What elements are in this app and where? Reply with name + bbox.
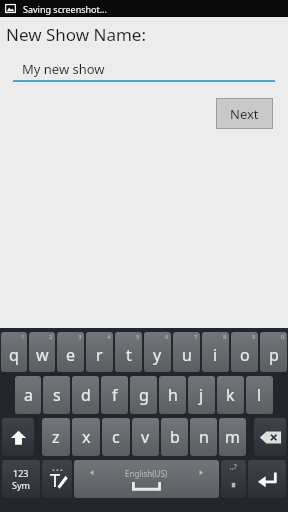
button[interactable]: 6	[144, 332, 171, 372]
button[interactable]: h	[159, 376, 186, 414]
button[interactable]: l	[246, 376, 273, 414]
staticText: s	[53, 384, 61, 406]
button[interactable]: m	[219, 418, 246, 456]
button[interactable]: x	[72, 418, 100, 456]
staticText: ,,?	[230, 462, 237, 472]
staticText: 1	[21, 333, 25, 341]
button[interactable]: c	[102, 418, 130, 456]
button[interactable]: Shift	[2, 418, 34, 456]
staticText: w	[36, 344, 49, 366]
button[interactable]: 4	[86, 332, 113, 372]
button[interactable]: f	[101, 376, 128, 414]
staticText: n	[199, 426, 209, 448]
staticText: 3	[78, 333, 82, 341]
button[interactable]: d	[72, 376, 99, 414]
staticText: 7	[194, 333, 198, 341]
button[interactable]: 8	[202, 332, 229, 372]
button[interactable]: 7	[173, 332, 200, 372]
button[interactable]: Next	[216, 98, 273, 129]
staticText: 6	[165, 333, 169, 341]
button[interactable]: j	[188, 376, 215, 414]
button[interactable]: 3	[57, 332, 84, 372]
staticText: a	[24, 384, 33, 406]
staticText: q	[9, 344, 19, 366]
staticText: p	[269, 344, 279, 366]
staticText: g	[139, 384, 149, 406]
staticText: Sym	[12, 479, 30, 491]
button[interactable]: g	[130, 376, 157, 414]
staticText: h	[168, 384, 178, 406]
staticText: 0	[281, 333, 285, 341]
button[interactable]: 1	[1, 332, 27, 372]
staticText: i	[213, 344, 218, 366]
staticText: 5	[136, 333, 140, 341]
staticText: Saving screenshot…	[23, 3, 107, 15]
staticText: o	[240, 344, 250, 366]
button[interactable]: n	[190, 418, 217, 456]
staticText: r	[96, 344, 103, 366]
staticText: Next	[230, 105, 259, 123]
staticText: 123	[13, 467, 29, 479]
button[interactable]: Space	[74, 460, 219, 498]
staticText: 2	[49, 333, 53, 341]
button[interactable]: z	[42, 418, 70, 456]
staticText: z	[52, 426, 60, 448]
staticText: m	[225, 426, 240, 448]
staticText: x	[82, 426, 91, 448]
staticText: 8	[223, 333, 227, 341]
staticText: d	[81, 384, 91, 406]
button[interactable]: 2	[29, 332, 55, 372]
button[interactable]: 5	[115, 332, 142, 372]
staticText: k	[226, 384, 235, 406]
staticText: u	[182, 344, 192, 366]
button[interactable]: Handwriting input	[42, 460, 72, 498]
button[interactable]: v	[132, 418, 159, 456]
button[interactable]: Period	[221, 460, 246, 498]
staticText: l	[257, 384, 262, 406]
button[interactable]: 9	[231, 332, 258, 372]
staticText: j	[199, 384, 204, 406]
staticText: 4	[107, 333, 111, 341]
button[interactable]: s	[43, 376, 70, 414]
button[interactable]: b	[161, 418, 188, 456]
staticText: v	[141, 426, 150, 448]
staticText: New Show Name:	[6, 23, 147, 46]
staticText: b	[170, 426, 180, 448]
staticText: English(US)	[125, 468, 168, 479]
button[interactable]: Symbols	[2, 460, 40, 498]
staticText: c	[112, 426, 120, 448]
button[interactable]: a	[15, 376, 41, 414]
staticText: f	[112, 384, 118, 406]
button[interactable]: k	[217, 376, 244, 414]
button[interactable]: 0	[260, 332, 287, 372]
button[interactable]: My new show	[13, 58, 275, 80]
button[interactable]: Backspace	[254, 418, 286, 456]
staticText: My new show	[22, 60, 105, 78]
staticText: e	[66, 344, 76, 366]
staticText: t	[126, 344, 132, 366]
staticText: y	[153, 344, 162, 366]
button[interactable]: Enter	[248, 460, 286, 498]
staticText: 9	[252, 333, 256, 341]
